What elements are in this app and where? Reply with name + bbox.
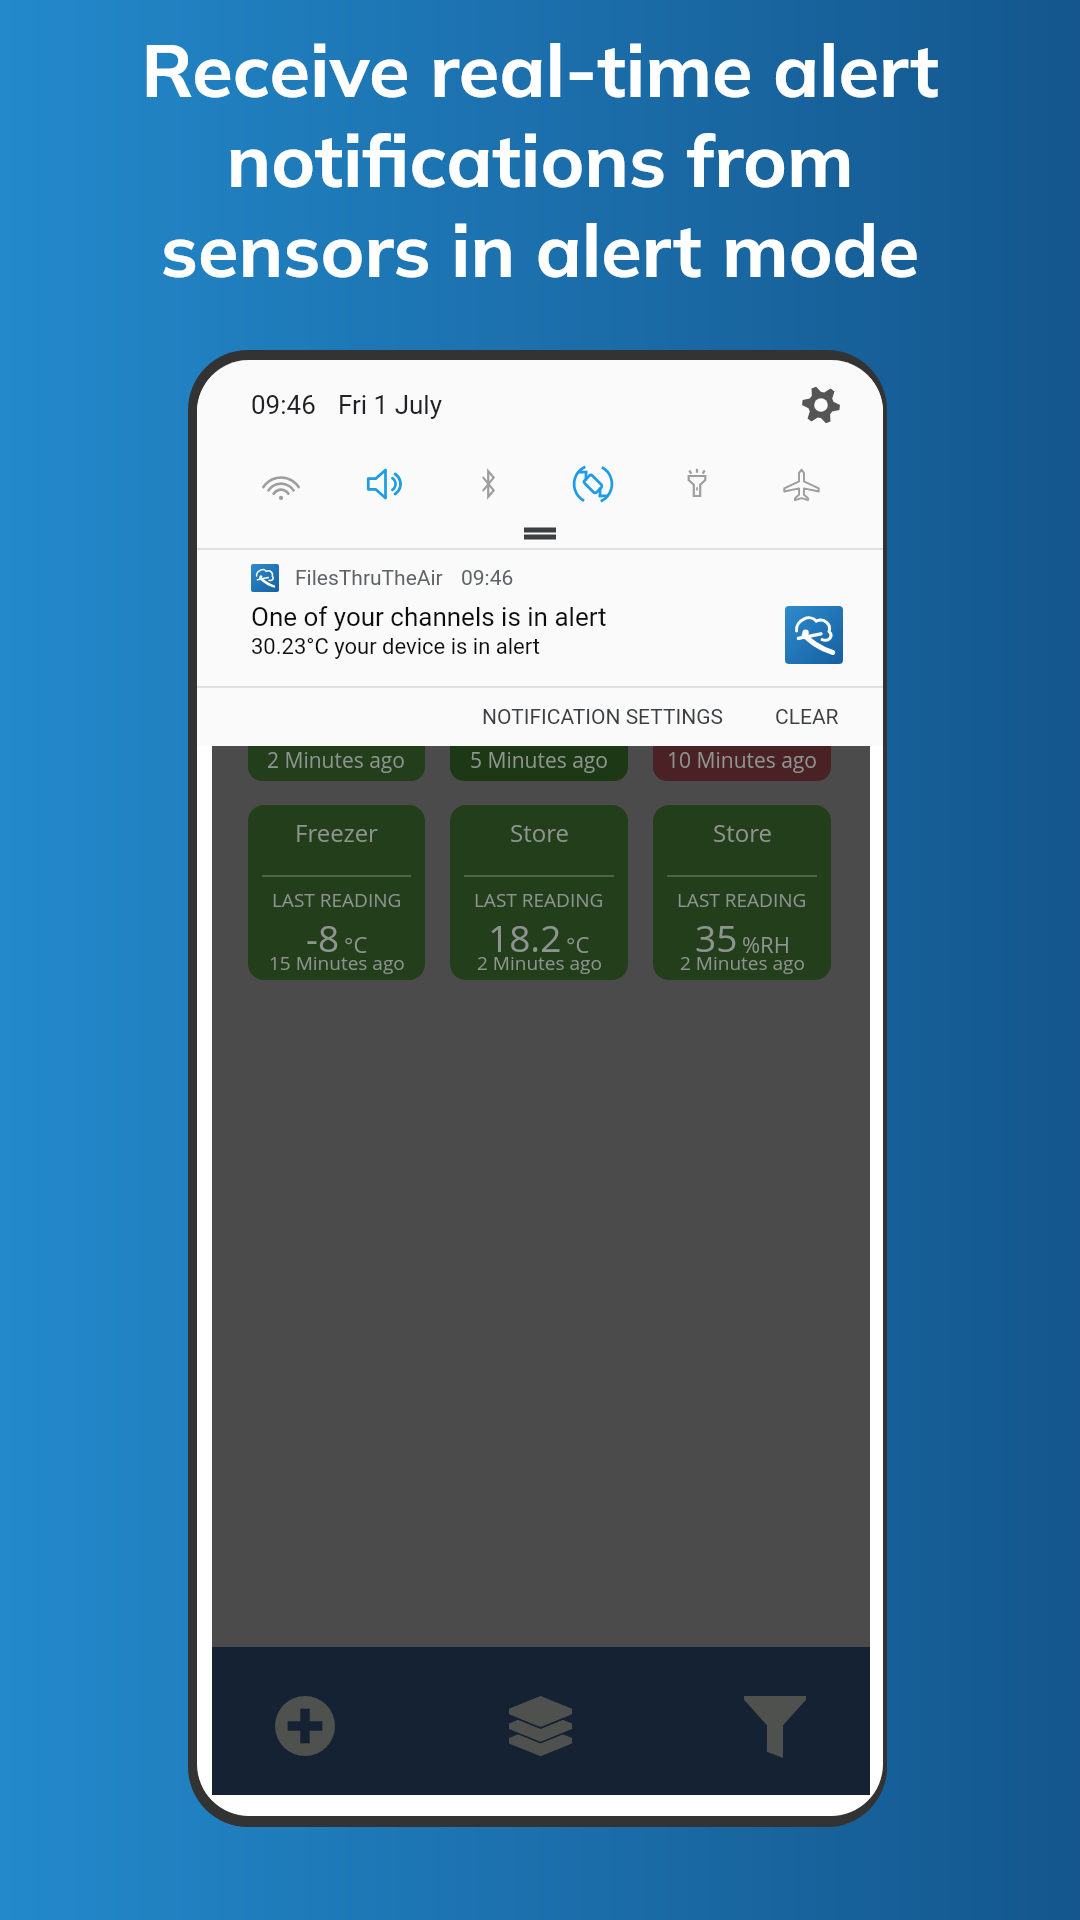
staticText: 30.23°C your device is in alert <box>251 634 540 660</box>
button[interactable]: Add sensor <box>269 1647 341 1795</box>
staticText: -8 <box>306 912 340 962</box>
button[interactable]: Bluetooth <box>437 450 541 518</box>
button[interactable]: Airplane mode <box>749 450 853 518</box>
staticText: LAST READING <box>677 887 807 913</box>
staticText: 09:46 <box>461 566 514 591</box>
button[interactable]: Store <box>450 805 628 980</box>
staticText: NOTIFICATION SETTINGS <box>482 705 723 730</box>
staticText: 18.2 <box>488 912 562 962</box>
button[interactable]: Flashlight <box>645 450 749 518</box>
staticText: LAST READING <box>272 887 402 913</box>
staticText: °C <box>344 929 368 959</box>
button[interactable]: 5 Minutes ago <box>450 746 628 781</box>
staticText: 09:46 <box>251 390 316 420</box>
staticText: Store <box>713 816 772 849</box>
button[interactable]: Auto rotate <box>541 450 645 518</box>
button[interactable]: Filter <box>739 1647 811 1795</box>
staticText: 2 Minutes ago <box>680 950 805 976</box>
staticText: 10 Minutes ago <box>667 746 818 775</box>
button[interactable]: Volume <box>333 450 437 518</box>
staticText: %RH <box>742 929 790 959</box>
button[interactable]: Layer groups <box>504 1647 576 1795</box>
button[interactable]: 10 Minutes ago <box>653 746 831 781</box>
staticText: FilesThruTheAir <box>295 566 443 591</box>
button[interactable]: 2 Minutes ago <box>248 746 425 781</box>
staticText: 15 Minutes ago <box>269 950 405 976</box>
staticText: Fri 1 July <box>338 390 442 420</box>
staticText: CLEAR <box>775 705 839 730</box>
staticText: LAST READING <box>474 887 604 913</box>
button[interactable]: CLEAR <box>761 695 853 740</box>
button[interactable]: Settings <box>797 381 845 429</box>
staticText: 35 <box>695 912 738 962</box>
staticText: Store <box>510 816 569 849</box>
staticText: °C <box>566 929 590 959</box>
button[interactable]: Wi-Fi <box>229 450 333 518</box>
staticText: 2 Minutes ago <box>477 950 602 976</box>
staticText: One of your channels is in alert <box>251 602 607 632</box>
button[interactable]: Store <box>653 805 831 980</box>
staticText: 5 Minutes ago <box>470 746 609 775</box>
staticText: Receive real-time alert notifications fr… <box>0 23 1080 295</box>
button[interactable]: Freezer <box>248 805 425 980</box>
staticText: Freezer <box>295 816 378 849</box>
button[interactable]: NOTIFICATION SETTINGS <box>468 695 737 740</box>
staticText: 2 Minutes ago <box>267 746 406 775</box>
